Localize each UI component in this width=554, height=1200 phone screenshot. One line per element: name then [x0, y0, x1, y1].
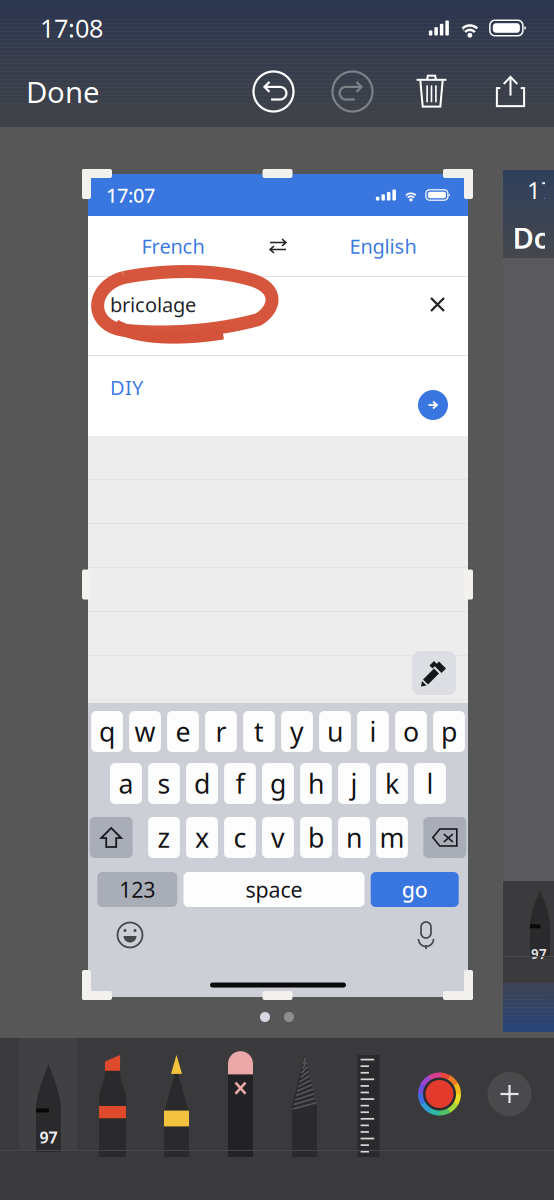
button[interactable]: n — [338, 817, 370, 858]
button[interactable]: t — [243, 711, 275, 752]
staticText: go — [402, 875, 428, 904]
staticText: s — [157, 766, 170, 801]
staticText: i — [369, 714, 376, 749]
staticText: u — [327, 714, 343, 749]
button[interactable]: Clear — [423, 290, 452, 319]
staticText: c — [233, 820, 246, 855]
staticText: q — [99, 714, 115, 749]
staticText: space — [245, 875, 302, 904]
staticText: w — [134, 714, 155, 749]
button[interactable]: Tool — [83, 1038, 141, 1150]
button[interactable]: w — [129, 711, 161, 752]
staticText: d — [194, 766, 210, 801]
button[interactable]: Redo — [313, 59, 392, 123]
button[interactable]: v — [262, 817, 294, 858]
button[interactable]: Shift — [90, 817, 133, 858]
button[interactable]: Handwriting — [412, 651, 456, 695]
button[interactable]: s — [148, 763, 180, 804]
staticText: 97 — [531, 945, 547, 963]
staticText: a — [118, 766, 133, 801]
button[interactable]: x — [186, 817, 218, 858]
button[interactable]: Share — [471, 59, 550, 123]
button[interactable]: Swap languages — [258, 224, 298, 268]
staticText: b — [308, 820, 324, 855]
button[interactable]: Delete — [423, 817, 466, 858]
staticText: r — [215, 714, 226, 749]
staticText: 97 — [39, 1127, 57, 1148]
staticText: 17:08 — [40, 11, 103, 45]
staticText: n — [346, 820, 362, 855]
button[interactable]: i — [357, 711, 389, 752]
staticText: DIY — [110, 374, 143, 401]
button[interactable]: Tool — [275, 1038, 333, 1150]
staticText: p — [441, 714, 457, 749]
button[interactable]: e — [167, 711, 199, 752]
button[interactable]: Delete — [392, 59, 471, 123]
button[interactable]: q — [91, 711, 123, 752]
staticText: m — [379, 820, 404, 855]
button[interactable]: Tool — [211, 1038, 269, 1150]
button[interactable]: y — [281, 711, 313, 752]
button[interactable]: Tool — [339, 1038, 397, 1150]
button[interactable]: 123 — [97, 872, 177, 907]
staticText: t — [254, 714, 264, 749]
button[interactable]: Go — [418, 390, 448, 420]
button[interactable]: Tool — [147, 1038, 205, 1150]
button[interactable]: Color — [417, 1072, 461, 1116]
button[interactable]: space — [183, 872, 364, 907]
staticText: 17 — [527, 174, 554, 206]
button[interactable]: Emoji — [108, 915, 152, 955]
staticText: y — [290, 714, 304, 749]
staticText: z — [157, 820, 170, 855]
staticText: l — [426, 766, 433, 801]
staticText: French — [141, 233, 204, 259]
button[interactable]: f — [224, 763, 256, 804]
button[interactable]: u — [319, 711, 351, 752]
button[interactable]: o — [395, 711, 427, 752]
staticText: 123 — [119, 875, 155, 904]
staticText: h — [308, 766, 324, 801]
button[interactable]: b — [300, 817, 332, 858]
button[interactable]: h — [300, 763, 332, 804]
button[interactable]: Add — [487, 1072, 531, 1116]
button[interactable]: a — [110, 763, 142, 804]
staticText: f — [235, 766, 244, 801]
staticText: k — [385, 766, 399, 801]
button[interactable]: c — [224, 817, 256, 858]
staticText: bricolage — [110, 291, 196, 318]
button[interactable]: m — [376, 817, 408, 858]
button[interactable]: go — [371, 872, 459, 907]
button[interactable]: d — [186, 763, 218, 804]
button[interactable]: j — [338, 763, 370, 804]
staticText: v — [271, 820, 285, 855]
staticText: o — [403, 714, 419, 749]
staticText: Done — [26, 72, 100, 111]
button[interactable]: Dictation — [404, 915, 448, 955]
staticText: j — [350, 766, 357, 801]
button[interactable]: r — [205, 711, 237, 752]
button[interactable]: p — [433, 711, 465, 752]
button[interactable]: l — [414, 763, 446, 804]
staticText: Done — [512, 218, 554, 257]
button[interactable]: g — [262, 763, 294, 804]
staticText: 17:07 — [106, 182, 155, 208]
button[interactable]: Undo — [234, 59, 313, 123]
button[interactable]: English — [298, 216, 468, 276]
button[interactable]: z — [148, 817, 180, 858]
button[interactable]: Done — [0, 59, 120, 123]
button[interactable]: French — [88, 216, 258, 276]
staticText: e — [175, 714, 190, 749]
staticText: g — [270, 766, 286, 801]
button[interactable]: Tool — [19, 1038, 77, 1150]
staticText: English — [349, 233, 416, 259]
button[interactable]: k — [376, 763, 408, 804]
staticText: x — [195, 820, 209, 855]
